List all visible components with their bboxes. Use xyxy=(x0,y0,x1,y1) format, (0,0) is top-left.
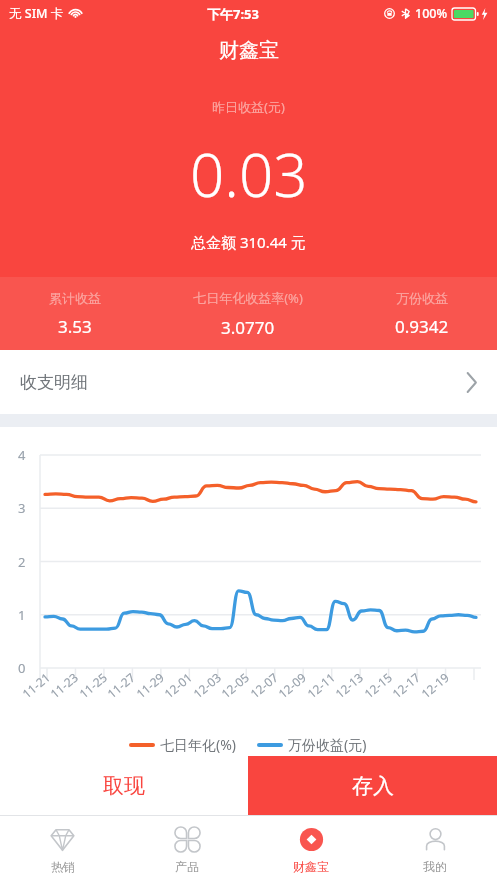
staticText: 热销 xyxy=(51,859,75,874)
button[interactable]: 七日年化收益率(%) xyxy=(150,277,346,350)
staticText: 0.9342 xyxy=(395,315,449,338)
button[interactable]: 我的 xyxy=(373,816,497,883)
staticText: 12-03 xyxy=(190,669,224,701)
staticText: 12-07 xyxy=(247,669,281,701)
staticText: 万份收益 xyxy=(396,290,448,306)
staticText: 七日年化收益率(%) xyxy=(193,289,303,307)
staticText: 财鑫宝 xyxy=(293,859,329,874)
staticText: 12-09 xyxy=(275,669,309,701)
staticText: 0 xyxy=(18,659,26,677)
staticText: 2 xyxy=(18,553,26,571)
staticText: 1 xyxy=(18,606,26,624)
staticText: 取现 xyxy=(103,773,145,799)
button[interactable]: 累计收益 xyxy=(0,277,150,350)
staticText: 存入 xyxy=(352,773,394,799)
staticText: 万份收益(元) xyxy=(288,735,367,754)
staticText: 产品 xyxy=(175,859,199,874)
staticText: 3.53 xyxy=(58,315,92,338)
staticText: 12-11 xyxy=(304,669,338,701)
staticText: 11-23 xyxy=(47,669,81,701)
button[interactable]: 存入 xyxy=(248,756,497,815)
staticText: 11-29 xyxy=(133,669,167,701)
button[interactable]: 财鑫宝 xyxy=(249,816,373,883)
staticText: 下午7:53 xyxy=(207,5,259,23)
staticText: 总金额 310.44 元 xyxy=(191,232,306,252)
staticText: 累计收益 xyxy=(49,290,101,306)
staticText: 我的 xyxy=(423,859,447,874)
staticText: 0.03 xyxy=(190,133,308,215)
button[interactable]: 收支明细 xyxy=(0,350,497,414)
staticText: 收支明细 xyxy=(20,372,88,393)
staticText: 11-27 xyxy=(104,669,138,701)
staticText: 12-05 xyxy=(218,669,252,701)
staticText: 昨日收益(元) xyxy=(212,98,285,116)
staticText: 财鑫宝 xyxy=(219,38,279,63)
staticText: 11-21 xyxy=(19,669,53,701)
staticText: 11-25 xyxy=(76,669,110,701)
staticText: 12-13 xyxy=(332,669,366,701)
staticText: 4 xyxy=(18,446,26,464)
staticText: 100% xyxy=(415,5,448,22)
button[interactable]: 产品 xyxy=(125,816,249,883)
staticText: 12-01 xyxy=(161,669,195,701)
staticText: 3 xyxy=(18,499,26,517)
staticText: 12-15 xyxy=(361,669,395,701)
staticText: 12-19 xyxy=(418,669,452,701)
button[interactable]: 万份收益 xyxy=(346,277,497,350)
staticText: 3.0770 xyxy=(221,316,275,339)
staticText: 七日年化(%) xyxy=(160,735,237,754)
staticText: 无 SIM 卡 xyxy=(9,5,64,22)
button[interactable]: 取现 xyxy=(0,756,248,815)
staticText: 12-17 xyxy=(389,669,423,701)
button[interactable]: 热销 xyxy=(0,816,125,883)
